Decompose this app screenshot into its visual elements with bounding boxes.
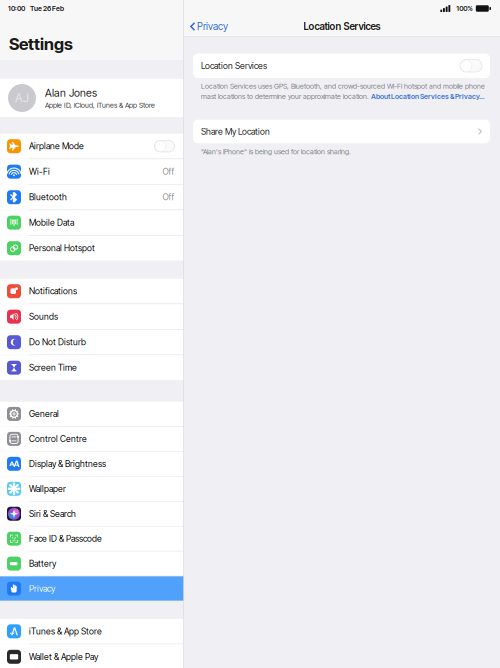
staticText: iTunes & App Store (29, 626, 102, 637)
staticText: mast locations to determine your approxi… (201, 92, 371, 100)
staticText: Off (162, 166, 174, 177)
staticText: 100% (456, 4, 473, 13)
staticText: Notifications (29, 286, 77, 296)
staticText: Wi-Fi (29, 166, 50, 177)
staticText: Off (162, 192, 174, 202)
button[interactable]: Control Centre (0, 427, 183, 451)
button[interactable]: Face ID & Passcode (0, 526, 183, 551)
button[interactable]: Share My Location (193, 120, 490, 143)
staticText: Battery (29, 558, 56, 569)
staticText: Do Not Disturb (29, 337, 86, 347)
button[interactable]: Screen Time (0, 355, 183, 380)
button[interactable]: iTunes & App Store (0, 619, 183, 644)
button[interactable]: AJ (0, 79, 183, 117)
staticText: Screen Time (29, 362, 77, 373)
staticText: Wallet & Apple Pay (29, 652, 98, 662)
staticText: Control Centre (29, 434, 87, 444)
staticText: Airplane Mode (29, 141, 84, 151)
staticText: General (29, 409, 59, 419)
staticText: Mobile Data (29, 217, 74, 228)
button[interactable]: Privacy (184, 17, 236, 36)
button[interactable]: Wallet & Apple Pay (0, 644, 183, 668)
staticText: Location Services uses GPS, Bluetooth, a… (201, 82, 485, 90)
staticText: "Alan's iPhone" is being used for locati… (201, 147, 351, 156)
button[interactable]: Bluetooth (0, 185, 183, 210)
staticText: Privacy (29, 583, 55, 594)
staticText: Location Services (303, 20, 380, 32)
staticText: Apple ID, iCloud, iTunes & App Store (45, 101, 155, 109)
staticText: Privacy (197, 20, 228, 32)
staticText: Wallpaper (29, 483, 66, 494)
button[interactable]: Do Not Disturb (0, 330, 183, 355)
button[interactable]: Airplane Mode (0, 134, 183, 159)
staticText: AJ (15, 91, 29, 105)
button[interactable]: Siri & Search (0, 501, 183, 526)
staticText: Settings (9, 34, 73, 54)
staticText: Bluetooth (29, 192, 67, 202)
staticText: Face ID & Passcode (29, 533, 102, 544)
button[interactable]: Wallpaper (0, 476, 183, 501)
staticText: Siri & Search (29, 508, 76, 519)
button[interactable]: General (0, 402, 183, 426)
staticText: Alan Jones (45, 86, 97, 99)
button[interactable]: Display & Brightness (0, 452, 183, 476)
button[interactable]: Mobile Data (0, 210, 183, 235)
button[interactable]: Privacy (0, 576, 183, 601)
button[interactable]: Sounds (0, 304, 183, 329)
button[interactable]: About Location Services & Privacy… (371, 92, 484, 100)
button[interactable]: Battery (0, 551, 183, 576)
staticText: 10:00 (8, 4, 25, 13)
staticText: About Location Services & Privacy… (371, 92, 484, 100)
staticText: Personal Hotspot (29, 243, 95, 253)
button[interactable]: Notifications (0, 279, 183, 304)
button[interactable]: Wi-Fi (0, 159, 183, 184)
staticText: Sounds (29, 311, 58, 322)
staticText: Share My Location (201, 126, 270, 137)
staticText: Location Services (201, 60, 267, 71)
staticText: Display & Brightness (29, 459, 106, 469)
button[interactable]: Personal Hotspot (0, 236, 183, 261)
staticText: Tue 26 Feb (30, 4, 64, 13)
